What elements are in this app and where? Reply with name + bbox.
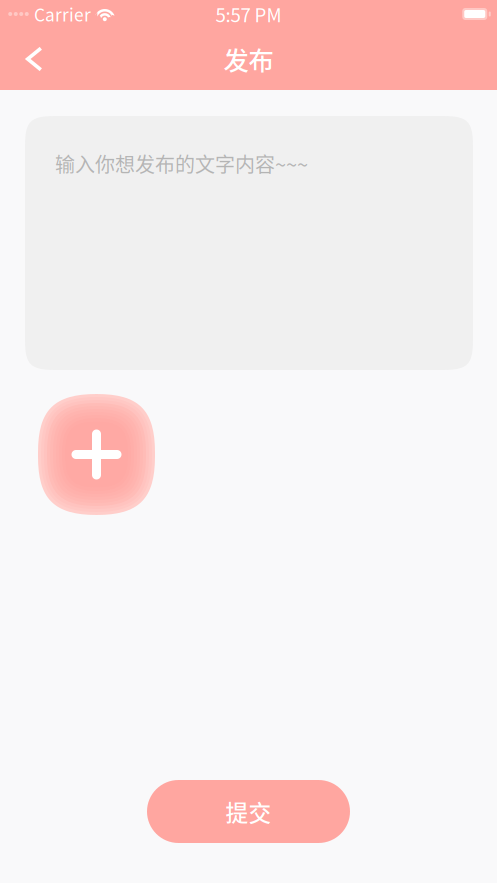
staticText: 发布 xyxy=(223,41,273,77)
staticText: 提交 xyxy=(225,795,271,828)
staticText: Carrier xyxy=(34,1,91,27)
button[interactable]: Back xyxy=(8,28,60,90)
button[interactable]: 提交 xyxy=(147,780,350,843)
staticText: 输入你想发布的文字内容~~~ xyxy=(55,149,308,178)
button[interactable]: Add photo xyxy=(38,394,155,515)
button[interactable]: 输入你想发布的文字内容~~~ xyxy=(25,116,473,370)
staticText: 5:57 PM xyxy=(215,0,281,27)
